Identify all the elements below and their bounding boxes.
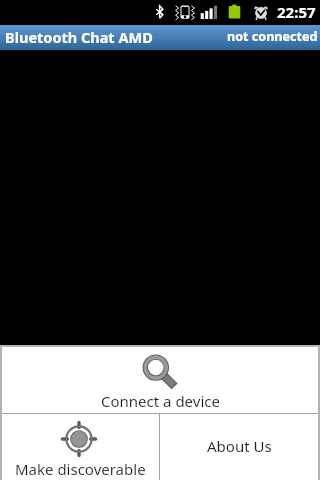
other: Ringer vibrate [174,4,196,19]
staticText: 22:57 [277,2,316,22]
other: Alarm set [254,4,268,19]
button[interactable]: Connect a device [2,347,318,413]
other: Battery full [228,4,240,19]
other: Bluetooth on [156,5,163,19]
staticText: Make discoverable [15,459,146,479]
button[interactable]: Make discoverable [2,414,159,480]
staticText: Connect a device [101,391,220,411]
staticText: About Us [207,436,272,456]
staticText: not connected [227,28,318,45]
staticText: Bluetooth Chat AMD [5,27,153,47]
other: Signal strength [200,5,217,19]
button[interactable]: About Us [160,414,318,480]
